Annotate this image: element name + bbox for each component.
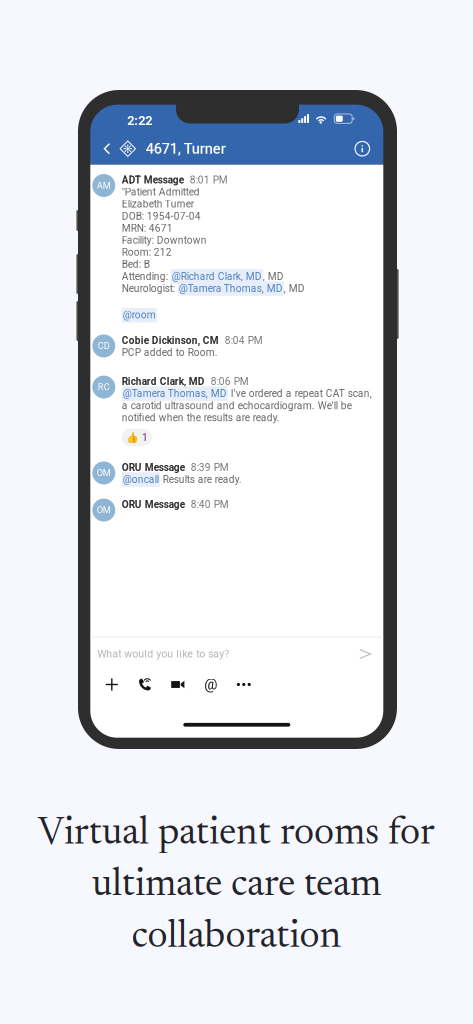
staticText: notified when the results are ready.	[122, 412, 280, 424]
staticText: Room: 212	[122, 246, 172, 258]
staticText: "Patient Admitted	[122, 186, 200, 198]
staticText: Facility: Downtown	[122, 234, 207, 246]
staticText: 4671, Turner	[146, 140, 226, 157]
staticText: ORU Message	[122, 462, 185, 473]
staticText: Virtual patient rooms for	[38, 815, 435, 854]
staticText: @Richard Clark, MD	[172, 270, 262, 282]
staticText: 👍	[125, 431, 138, 443]
staticText: OM	[97, 505, 111, 515]
button[interactable]: Back	[94, 133, 119, 165]
staticText: What would you like to say?	[97, 648, 229, 660]
staticText: ultimate care team	[92, 867, 381, 905]
staticText: OM	[97, 468, 111, 478]
button[interactable]: Video call	[161, 670, 194, 698]
staticText: 2:22	[127, 113, 152, 128]
staticText: collaboration	[131, 918, 341, 957]
staticText: , MD	[284, 282, 305, 294]
staticText: Elizabeth Turner	[122, 198, 194, 210]
staticText: CD	[98, 341, 110, 351]
staticText: 1	[142, 431, 148, 443]
staticText: @Tamera Thomas, MD	[123, 388, 227, 400]
staticText: 8:06 PM	[211, 376, 249, 387]
staticText: Neurologist:	[122, 282, 178, 294]
staticText: AM	[97, 180, 111, 191]
staticText: I've ordered a repeat CAT scan,	[228, 388, 372, 400]
staticText: 8:39 PM	[191, 461, 229, 473]
button[interactable]: More options	[227, 670, 260, 698]
staticText: , MD	[263, 270, 284, 282]
button[interactable]: Room information	[347, 133, 377, 165]
staticText: Richard Clark, MD	[122, 376, 205, 387]
staticText: Results are ready.	[160, 474, 242, 485]
staticText: @room	[123, 309, 156, 321]
button[interactable]: Add attachment	[95, 670, 128, 698]
staticText: @Tamera Thomas, MD	[179, 282, 283, 294]
staticText: Cobie Dickinson, CM	[122, 335, 219, 346]
staticText: 8:40 PM	[191, 499, 229, 510]
staticText: ORU Message	[122, 499, 185, 510]
button[interactable]: Send message	[356, 643, 374, 665]
staticText: MRN: 4671	[122, 222, 173, 234]
staticText: Attending:	[122, 270, 171, 282]
staticText: 8:01 PM	[190, 174, 228, 186]
staticText: RC	[98, 382, 110, 392]
staticText: PCP added to Room.	[122, 347, 218, 358]
staticText: DOB: 1954-07-04	[122, 210, 201, 222]
staticText: ADT Message	[122, 174, 184, 186]
staticText: a carotid ultrasound and echocardiogram.…	[122, 400, 352, 412]
button[interactable]: Mention someone	[194, 670, 227, 698]
staticText: @	[204, 676, 217, 693]
staticText: Bed: B	[122, 258, 150, 270]
staticText: 8:04 PM	[225, 334, 263, 346]
button[interactable]: Voice call	[128, 670, 161, 698]
staticText: @oncall	[123, 474, 159, 485]
